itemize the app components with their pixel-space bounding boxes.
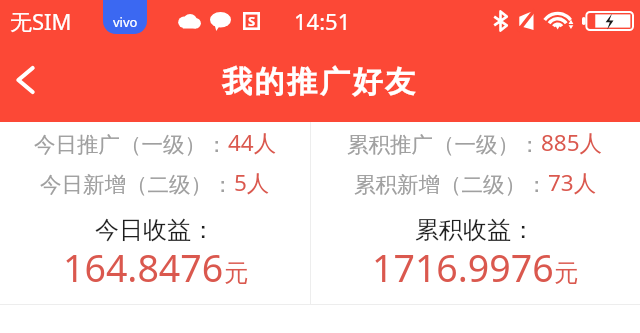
button[interactable]: 累积推广（一级）： <box>310 122 640 304</box>
staticText: 今日新增（二级）： <box>40 171 234 198</box>
staticText: 5人 <box>234 167 270 198</box>
staticText: 今日推广（一级）： <box>34 131 228 158</box>
button[interactable]: Back <box>3 58 47 102</box>
staticText: 今日收益： <box>95 215 215 245</box>
staticText: 我的推广好友 <box>222 63 418 101</box>
staticText: 累积收益： <box>415 215 535 245</box>
staticText: 无SIM <box>10 6 72 36</box>
staticText: S <box>248 12 256 30</box>
staticText: 885人 <box>541 127 603 158</box>
staticText: 1716.9976 <box>372 242 554 293</box>
staticText: 164.8476 <box>63 242 224 293</box>
staticText: 元 <box>224 258 248 288</box>
staticText: 44人 <box>228 127 277 158</box>
button[interactable]: 今日推广（一级）： <box>0 122 310 304</box>
staticText: 累积推广（一级）： <box>347 131 541 158</box>
staticText: 元 <box>554 258 578 288</box>
staticText: 累积新增（二级）： <box>354 171 548 198</box>
staticText: 73人 <box>548 167 597 198</box>
staticText: vivo <box>113 13 138 31</box>
staticText: 14:51 <box>294 6 351 36</box>
